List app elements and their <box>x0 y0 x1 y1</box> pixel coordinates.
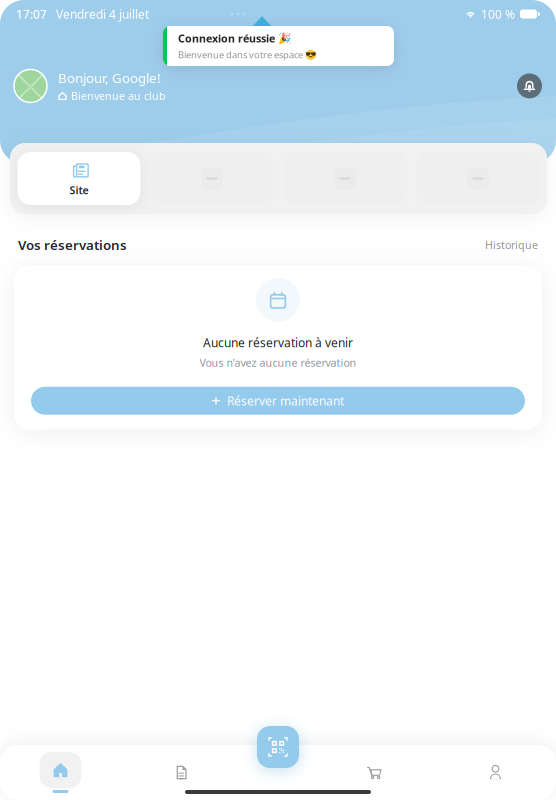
button[interactable]: Historique <box>485 238 538 252</box>
button[interactable]: Documents <box>121 745 242 800</box>
staticText: Vous n'avez aucune réservation <box>199 356 356 370</box>
staticText: Aucune réservation à venir <box>203 335 353 351</box>
staticText: Vendredi 4 juillet <box>56 6 149 22</box>
staticText: Vos réservations <box>18 236 127 254</box>
button[interactable]: Panier <box>314 745 435 800</box>
button[interactable]: Scanner un QR code <box>257 726 299 768</box>
staticText: Historique <box>485 238 538 252</box>
staticText: 17:07 <box>16 6 47 22</box>
button[interactable]: Site <box>17 152 140 205</box>
staticText: Bonjour, Google! <box>58 69 161 87</box>
staticText: 100 % <box>481 6 515 22</box>
button[interactable]: Accueil <box>0 745 121 800</box>
staticText: Bienvenue au club <box>71 89 166 103</box>
staticText: Réserver maintenant <box>227 393 344 409</box>
staticText: Site <box>69 183 88 197</box>
button[interactable]: Notifications <box>517 73 542 98</box>
button[interactable]: Réserver maintenant <box>31 387 525 415</box>
staticText: Connexion réussie 🎉 <box>178 31 291 45</box>
button[interactable]: Profil <box>435 745 556 800</box>
staticText: Bienvenue dans votre espace 😎 <box>178 48 317 61</box>
